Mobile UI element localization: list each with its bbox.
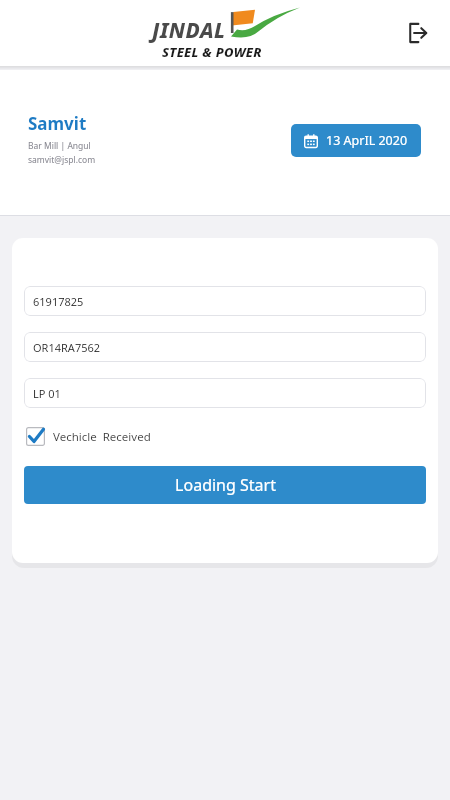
- button[interactable]: Loading Start: [24, 466, 426, 504]
- staticText: Samvit: [28, 112, 87, 135]
- button[interactable]: 61917825: [24, 286, 426, 316]
- staticText: Bar Mill | Angul: [28, 140, 91, 152]
- staticText: LP 01: [33, 386, 61, 401]
- staticText: Vechicle Received: [53, 429, 151, 445]
- button[interactable]: 13 AprIL 2020: [291, 124, 421, 157]
- button[interactable]: OR14RA7562: [24, 332, 426, 362]
- staticText: 13 AprIL 2020: [326, 132, 408, 149]
- button[interactable]: Logout: [396, 13, 436, 53]
- staticText: 61917825: [33, 294, 84, 309]
- button[interactable]: LP 01: [24, 378, 426, 408]
- staticText: STEEL & POWER: [162, 43, 262, 61]
- button[interactable]: Vechicle Received: [26, 427, 151, 446]
- staticText: samvit@jspl.com: [28, 154, 96, 166]
- staticText: JINDAL: [152, 16, 226, 45]
- staticText: OR14RA7562: [33, 340, 101, 355]
- staticText: Loading Start: [175, 474, 276, 496]
